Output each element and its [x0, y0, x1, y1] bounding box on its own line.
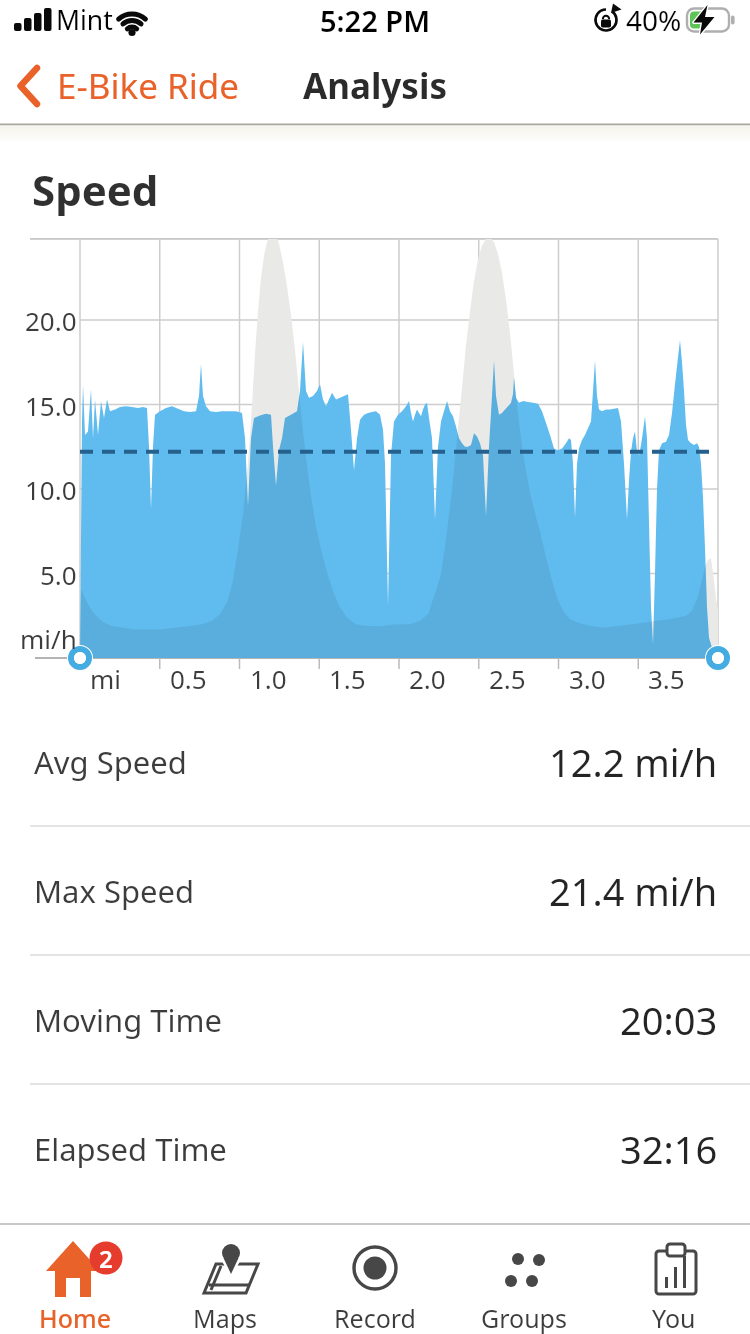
staticText: Maps — [193, 1301, 258, 1334]
staticText: E-Bike Ride — [57, 62, 240, 110]
staticText: 20.0 — [25, 303, 77, 338]
button[interactable] — [0, 698, 750, 826]
staticText: Groups — [481, 1301, 567, 1334]
staticText: 2.5 — [489, 661, 526, 696]
staticText: Record — [334, 1301, 416, 1334]
staticText: 1.5 — [329, 661, 366, 696]
staticText: 2.0 — [409, 661, 446, 696]
staticText: Speed — [32, 161, 159, 218]
staticText: Max Speed — [34, 870, 195, 912]
staticText: 3.5 — [648, 661, 685, 696]
staticText: 2 — [99, 1242, 113, 1275]
button[interactable] — [13, 1228, 137, 1334]
button[interactable] — [163, 1228, 287, 1334]
button[interactable] — [612, 1228, 736, 1334]
staticText: Analysis — [303, 62, 447, 110]
staticText: 32:16 — [620, 1123, 718, 1175]
staticText: 20:03 — [620, 994, 718, 1046]
staticText: 21.4 mi/h — [549, 865, 718, 917]
staticText: 12.2 mi/h — [549, 736, 718, 788]
button[interactable] — [0, 956, 750, 1084]
staticText: 3.0 — [569, 661, 606, 696]
staticText: 1.0 — [250, 661, 287, 696]
staticText: You — [652, 1301, 696, 1334]
staticText: mi — [90, 661, 122, 696]
button[interactable] — [0, 1085, 750, 1213]
staticText: Home — [39, 1301, 112, 1334]
button[interactable] — [313, 1228, 437, 1334]
staticText: 0.5 — [170, 661, 207, 696]
staticText: Moving Time — [34, 999, 222, 1041]
button[interactable] — [462, 1228, 586, 1334]
staticText: 5.0 — [40, 557, 77, 592]
staticText: mi/h — [20, 621, 77, 656]
staticText: 40% — [626, 1, 682, 39]
staticText: 10.0 — [25, 472, 77, 507]
staticText: Mint — [56, 2, 113, 38]
staticText: Avg Speed — [34, 741, 187, 783]
staticText: 5:22 PM — [320, 1, 431, 40]
button[interactable] — [8, 56, 240, 116]
staticText: Elapsed Time — [34, 1128, 227, 1170]
staticText: 15.0 — [25, 388, 77, 423]
button[interactable] — [0, 827, 750, 955]
